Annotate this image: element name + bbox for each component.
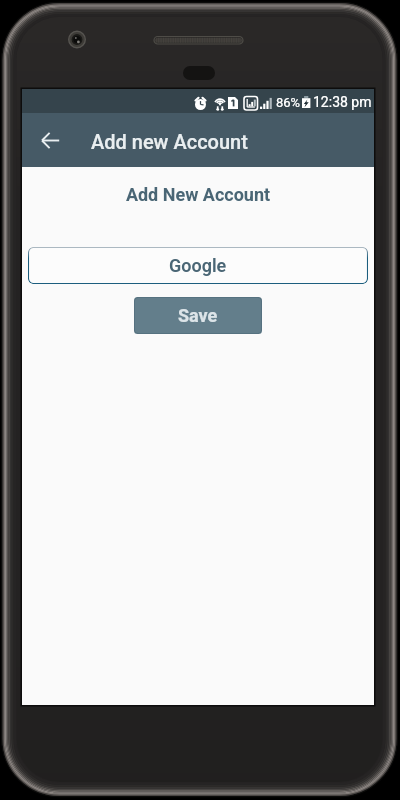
staticText: Save	[178, 305, 218, 326]
button[interactable]: Google	[28, 247, 368, 284]
staticText: Add New Account	[22, 184, 374, 205]
button[interactable]: Save	[134, 297, 262, 334]
staticText: Google	[169, 255, 227, 276]
staticText: Add new Account	[91, 130, 248, 153]
staticText: 12:38 pm	[313, 94, 372, 110]
button[interactable]: Back	[31, 120, 71, 160]
staticText: 86%	[276, 95, 301, 110]
